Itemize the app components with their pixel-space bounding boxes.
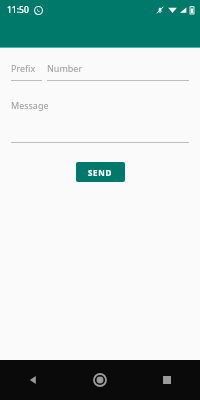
button[interactable]: Number [47,62,189,81]
button[interactable]: Message [11,99,189,143]
staticText: Number [47,62,83,74]
button[interactable]: Prefix [11,62,42,81]
staticText: 11:50 [7,4,29,16]
button[interactable]: Back [0,360,66,400]
staticText: SEND [88,167,113,178]
staticText: Message [11,99,49,111]
button[interactable]: SEND [76,162,125,182]
button[interactable]: Recent apps [133,360,200,400]
button[interactable]: Home [66,360,133,400]
staticText: Prefix [11,62,36,74]
